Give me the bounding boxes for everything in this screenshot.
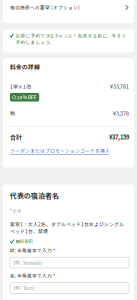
staticText: * bbox=[10, 207, 12, 214]
staticText: 名: 半角英字で入力 * bbox=[10, 272, 55, 279]
staticText: 姓: 半角英字で入力 * bbox=[10, 247, 55, 254]
staticText: 必須 bbox=[13, 208, 21, 214]
staticText: お得に予約できるチャンス！完売する前に、今すぐ予約しましょう。 bbox=[15, 32, 126, 46]
staticText: 1室 x 1泊 bbox=[10, 82, 31, 90]
staticText: 宿泊施設への要望 (オプション) bbox=[10, 4, 80, 11]
staticText: 客室1：大人2名、ダブルベッド1台およびシングルベッド1台、禁煙 bbox=[10, 221, 124, 234]
staticText: 合計 bbox=[10, 133, 22, 141]
staticText: (例 : Yamada) bbox=[13, 259, 43, 266]
button[interactable]: クーポンまたはプロモーションコードを挿入 bbox=[10, 147, 110, 155]
staticText: 代表の宿泊者名 bbox=[10, 190, 59, 200]
staticText: クーポンまたはプロモーションコードを挿入 bbox=[10, 147, 110, 154]
staticText: ¥3,378 bbox=[113, 109, 129, 117]
staticText: (例 : Taro) bbox=[13, 284, 35, 291]
button[interactable]: 宿泊施設への要望 (オプション) bbox=[0, 0, 137, 23]
staticText: ¥33,781 bbox=[110, 82, 129, 90]
staticText: 15% OFF bbox=[17, 94, 37, 100]
staticText: ¥37,159 bbox=[109, 133, 129, 141]
staticText: 税 bbox=[10, 109, 15, 117]
staticText: 料金の詳細 bbox=[10, 62, 40, 71]
staticText: 無料 WiFi bbox=[16, 238, 33, 244]
